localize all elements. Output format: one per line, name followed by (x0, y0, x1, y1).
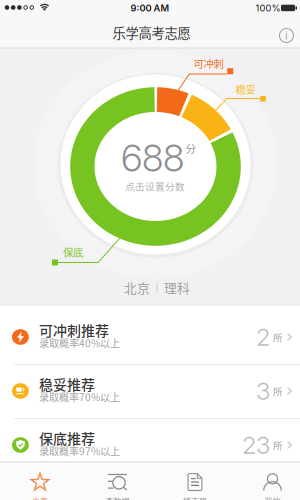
staticText: 分 (185, 140, 196, 156)
staticText: 理科 (164, 278, 190, 297)
staticText: 保底 (63, 244, 83, 260)
staticText: 2 (256, 322, 270, 351)
staticText: 录取概率97%以上 (39, 443, 120, 458)
staticText: 所 (273, 438, 283, 452)
staticText: 可冲刺推荐 (39, 320, 109, 340)
button[interactable]: 保底推荐 (0, 418, 300, 472)
button[interactable]: 填志愿 (158, 461, 232, 500)
staticText: 保底推荐 (39, 428, 95, 448)
staticText: 录取概率40%以上 (39, 335, 120, 350)
button[interactable]: 北京 (124, 278, 190, 297)
button[interactable]: 可冲刺推荐 (0, 310, 300, 364)
staticText: 主页 (32, 495, 48, 500)
staticText: 稳妥推荐 (39, 374, 95, 394)
button[interactable]: 主页 (3, 461, 77, 500)
staticText: 我的 (264, 495, 280, 500)
button[interactable]: 688 (100, 135, 210, 201)
staticText: 3 (256, 376, 270, 405)
staticText: 点击设置分数 (125, 179, 185, 193)
button[interactable]: 我的 (235, 461, 300, 500)
staticText: i (285, 29, 288, 42)
staticText: 可冲刺 (193, 56, 223, 71)
staticText: 北京 (124, 278, 150, 297)
staticText: 录取概率70%以上 (39, 389, 120, 404)
button[interactable]: 查数据 (80, 461, 154, 500)
staticText: 23 (242, 430, 270, 459)
staticText: 填志愿 (183, 495, 207, 500)
staticText: 乐学高考志愿 (112, 23, 190, 42)
staticText: 100% (255, 2, 280, 14)
button[interactable]: 关于 (275, 24, 297, 46)
staticText: 所 (273, 384, 283, 398)
button[interactable]: 稳妥推荐 (0, 364, 300, 418)
staticText: 688 (121, 135, 184, 181)
staticText: 所 (273, 330, 283, 344)
staticText: 查数据 (105, 495, 129, 500)
staticText: 稳妥 (235, 81, 255, 97)
staticText: 9:00 AM (130, 2, 169, 14)
